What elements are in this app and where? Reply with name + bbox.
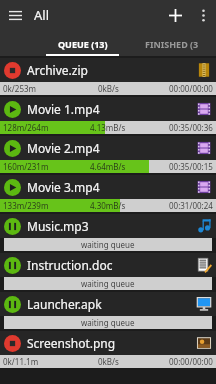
staticText: 4.30mB/s [90,200,126,211]
staticText: 00:31/00:24 [169,200,213,211]
staticText: 00:00/00:00 [169,356,213,367]
staticText: All [34,6,50,24]
button[interactable]: Start download [4,62,21,79]
button[interactable]: Pause download [0,253,216,290]
button[interactable]: Open navigation drawer [0,0,30,30]
staticText: Archive.zip [27,62,88,78]
staticText: waiting queue [81,278,135,289]
staticText: 00:35/00:15 [169,161,213,172]
staticText: 00:00/00:00 [169,83,213,94]
staticText: 160m/231m [3,161,49,172]
staticText: 0kB/s [98,83,119,94]
staticText: 133m/239m [3,200,49,211]
staticText: waiting queue [81,239,135,250]
button[interactable]: QUEUE (13) [38,30,127,56]
button[interactable]: Pause download [4,257,21,274]
staticText: 128m/264m [3,122,49,133]
staticText: QUEUE (13) [58,38,108,50]
staticText: Screenshot.png [27,335,116,351]
staticText: Instruction.doc [27,257,113,273]
staticText: FINISHED (3 [145,38,199,50]
button[interactable]: Pause download [0,136,216,173]
button[interactable]: More options [190,2,216,28]
staticText: 0k/11.1m [3,356,39,367]
staticText: Movie 1.mp4 [27,101,100,117]
staticText: Movie 2.mp4 [27,140,100,156]
button[interactable]: All [30,6,54,24]
button[interactable]: Pause download [4,140,21,157]
button[interactable]: FINISHED (3 [127,30,216,56]
button[interactable]: Pause download [0,214,216,251]
button[interactable]: Pause download [0,175,216,212]
staticText: Movie 3.mp4 [27,179,100,195]
button[interactable]: Start download [4,335,21,352]
staticText: Launcher.apk [27,296,102,312]
staticText: 4.13mB/s [90,122,126,133]
staticText: waiting queue [81,317,135,328]
button[interactable]: Start download [0,331,216,368]
staticText: Music.mp3 [27,218,89,234]
staticText: 0kB/s [98,356,119,367]
staticText: 0k/253m [3,83,37,94]
staticText: 00:35/00:36 [169,122,213,133]
button[interactable]: Pause download [4,101,21,118]
button[interactable]: Pause download [4,218,21,235]
button[interactable]: Add download [160,0,190,30]
button[interactable]: Pause download [0,292,216,329]
button[interactable]: Pause download [4,296,21,313]
staticText: 4.64mB/s [90,161,126,172]
button[interactable]: Pause download [0,97,216,134]
button[interactable]: Pause download [4,179,21,196]
button[interactable]: Start download [0,58,216,95]
